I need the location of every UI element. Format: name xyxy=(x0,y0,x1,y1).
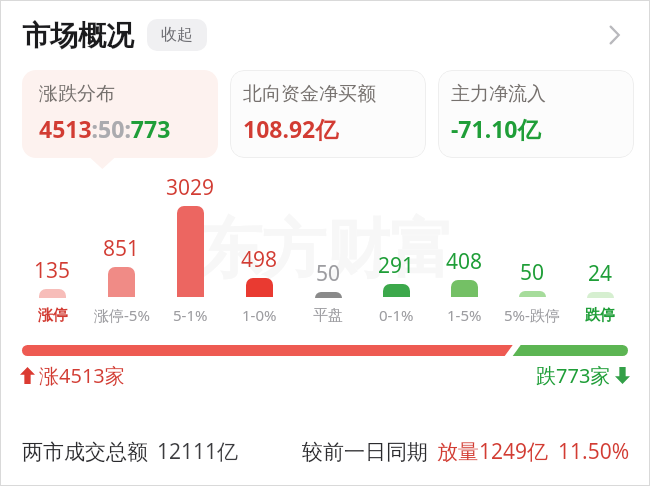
staticText: 涨停-5% xyxy=(94,305,150,325)
staticText: 1-0% xyxy=(242,305,277,325)
staticText: 3029 xyxy=(166,173,215,202)
staticText: 50 xyxy=(520,258,545,287)
staticText: 135 xyxy=(34,256,71,285)
button[interactable]: 涨跌分布 xyxy=(22,70,218,158)
staticText: 北向资金净买额 xyxy=(243,82,376,106)
button[interactable]: 851 xyxy=(87,173,156,325)
staticText: 50 xyxy=(316,259,341,288)
button[interactable]: 135 xyxy=(18,173,87,325)
staticText: 108.92亿 xyxy=(243,113,339,144)
button[interactable]: 北向资金净买额 xyxy=(230,70,426,158)
button[interactable]: 24 xyxy=(566,173,634,325)
staticText: 涨停 xyxy=(38,306,68,325)
button[interactable]: 408 xyxy=(430,173,498,325)
staticText: 851 xyxy=(103,234,140,263)
staticText: 291 xyxy=(378,251,415,280)
staticText: 1-5% xyxy=(447,305,482,325)
staticText: 跌773家 xyxy=(536,362,611,389)
staticText: 放量1249亿 xyxy=(437,437,549,466)
staticText: 东方财富 xyxy=(198,209,454,290)
staticText: 11.50% xyxy=(558,437,630,466)
button[interactable]: 3029 xyxy=(156,173,225,325)
staticText: 24 xyxy=(588,259,613,288)
staticText: 408 xyxy=(446,247,483,276)
staticText: 市场概况 xyxy=(22,18,134,53)
staticText: 5-1% xyxy=(173,305,208,325)
staticText: 12111亿 xyxy=(157,437,239,466)
button[interactable]: 主力净流入 xyxy=(438,70,634,158)
staticText: 4513:50:773 xyxy=(39,113,171,144)
staticText: 收起 xyxy=(161,25,193,45)
staticText: 涨跌分布 xyxy=(39,82,115,106)
button[interactable]: 291 xyxy=(362,173,430,325)
button[interactable]: 50 xyxy=(294,173,362,325)
staticText: 两市成交总额 xyxy=(22,439,148,465)
staticText: 涨4513家 xyxy=(39,362,125,389)
staticText: 较前一日同期 xyxy=(302,439,428,465)
button[interactable]: 50 xyxy=(498,173,566,325)
staticText: 0-1% xyxy=(379,305,414,325)
button[interactable]: 收起 xyxy=(147,19,207,51)
staticText: 498 xyxy=(241,245,278,274)
staticText: 平盘 xyxy=(313,306,343,325)
button[interactable]: 498 xyxy=(225,173,294,325)
staticText: 5%-跌停 xyxy=(504,305,560,325)
staticText: 跌停 xyxy=(585,306,615,325)
staticText: -71.10亿 xyxy=(451,113,541,144)
staticText: 主力净流入 xyxy=(451,82,546,106)
button[interactable]: 查看更多 xyxy=(594,15,634,55)
